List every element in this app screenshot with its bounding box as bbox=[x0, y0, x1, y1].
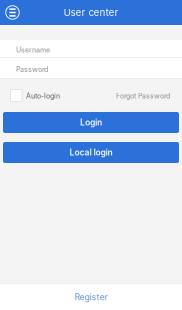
staticText: Username bbox=[16, 46, 50, 54]
staticText: Login bbox=[80, 117, 102, 127]
button[interactable]: Register bbox=[0, 284, 182, 310]
staticText: Forgot Password bbox=[116, 92, 170, 100]
button[interactable]: Username bbox=[0, 40, 182, 57]
staticText: Password bbox=[16, 65, 48, 74]
staticText: User center bbox=[63, 7, 118, 18]
button[interactable]: Login bbox=[3, 112, 179, 133]
button[interactable]: Password bbox=[0, 58, 182, 78]
staticText: Auto-login bbox=[26, 92, 60, 100]
staticText: Local login bbox=[69, 147, 112, 157]
button[interactable]: Local login bbox=[3, 142, 179, 163]
button[interactable]: Forgot Password bbox=[116, 91, 170, 100]
button[interactable]: Auto-login bbox=[10, 89, 60, 101]
button[interactable]: Menu bbox=[0, 0, 25, 25]
staticText: Register bbox=[74, 292, 107, 302]
